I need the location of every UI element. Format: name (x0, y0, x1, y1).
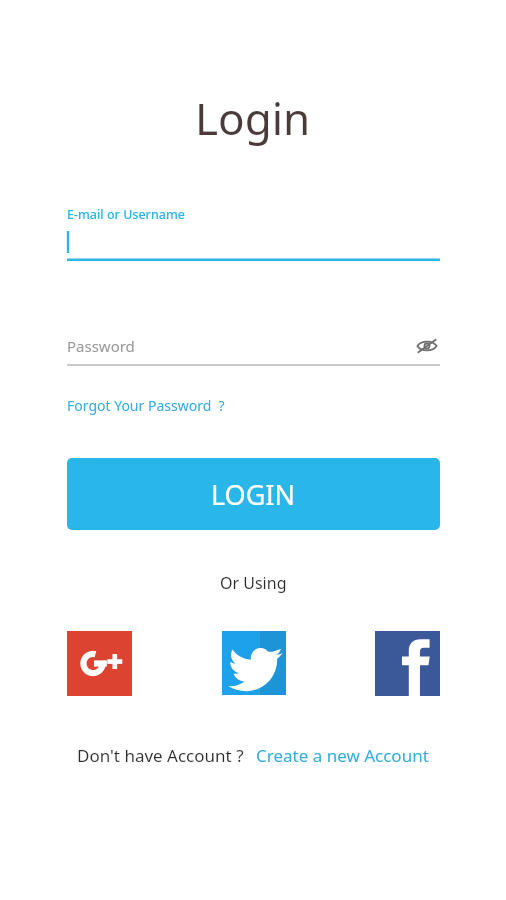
staticText: Forgot Your Password ? (67, 396, 225, 415)
button[interactable]: Show password (414, 333, 440, 359)
staticText: Or Using (220, 572, 287, 594)
button[interactable]: Create a new Account (256, 744, 429, 767)
button[interactable]: Sign in with Facebook (375, 631, 440, 696)
button[interactable]: Sign in with Twitter (222, 631, 286, 695)
staticText: Create a new Account (256, 744, 429, 767)
button[interactable]: Sign in with Google Plus (67, 631, 132, 696)
button[interactable]: E-mail or Username (67, 206, 440, 261)
staticText: E-mail or Username (67, 206, 185, 223)
staticText: Don't have Account ? (77, 744, 244, 767)
button[interactable]: Password (67, 333, 440, 366)
button[interactable]: LOGIN (67, 458, 440, 530)
staticText: Login (195, 88, 311, 148)
button[interactable]: Forgot Your Password ? (67, 396, 225, 415)
staticText: LOGIN (211, 476, 296, 513)
staticText: Password (67, 336, 135, 356)
